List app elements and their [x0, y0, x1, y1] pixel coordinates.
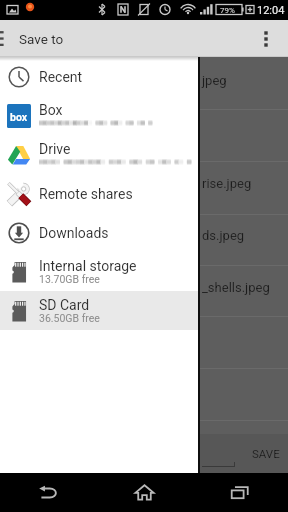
staticText: 13.70GB free: [39, 273, 100, 285]
staticText: Downloads: [39, 225, 109, 241]
button[interactable]: SD Card: [0, 291, 200, 330]
staticText: SD Card: [39, 297, 90, 313]
button[interactable]: Internal storage: [0, 252, 200, 291]
staticText: SAVE: [252, 447, 280, 460]
staticText: box: [10, 111, 28, 123]
button[interactable]: Downloads: [0, 213, 200, 252]
staticText: jpeg: [202, 73, 227, 88]
staticText: rise.jpeg: [202, 176, 252, 191]
staticText: Drive: [39, 141, 71, 157]
staticText: _shells.jpeg: [202, 280, 270, 295]
button[interactable]: Remote shares: [0, 174, 200, 213]
staticText: Save to: [19, 31, 64, 47]
button[interactable]: Back: [0, 473, 96, 512]
staticText: 12:04: [257, 4, 285, 17]
staticText: 79%: [220, 6, 235, 15]
button[interactable]: Open navigation drawer: [0, 20, 22, 57]
button[interactable]: More options: [251, 20, 281, 57]
staticText: Box: [39, 102, 63, 118]
button[interactable]: Recent apps: [192, 473, 288, 512]
button[interactable]: Home: [96, 473, 192, 512]
staticText: 36.50GB free: [39, 312, 100, 324]
button[interactable]: SAVE: [243, 441, 288, 465]
staticText: Internal storage: [39, 258, 137, 274]
button[interactable]: box: [0, 96, 200, 135]
button[interactable]: Drive: [0, 135, 200, 174]
staticText: Recent: [39, 69, 83, 85]
button[interactable]: Recent: [0, 57, 200, 96]
staticText: Remote shares: [39, 186, 133, 202]
staticText: ds.jpeg: [202, 228, 245, 243]
